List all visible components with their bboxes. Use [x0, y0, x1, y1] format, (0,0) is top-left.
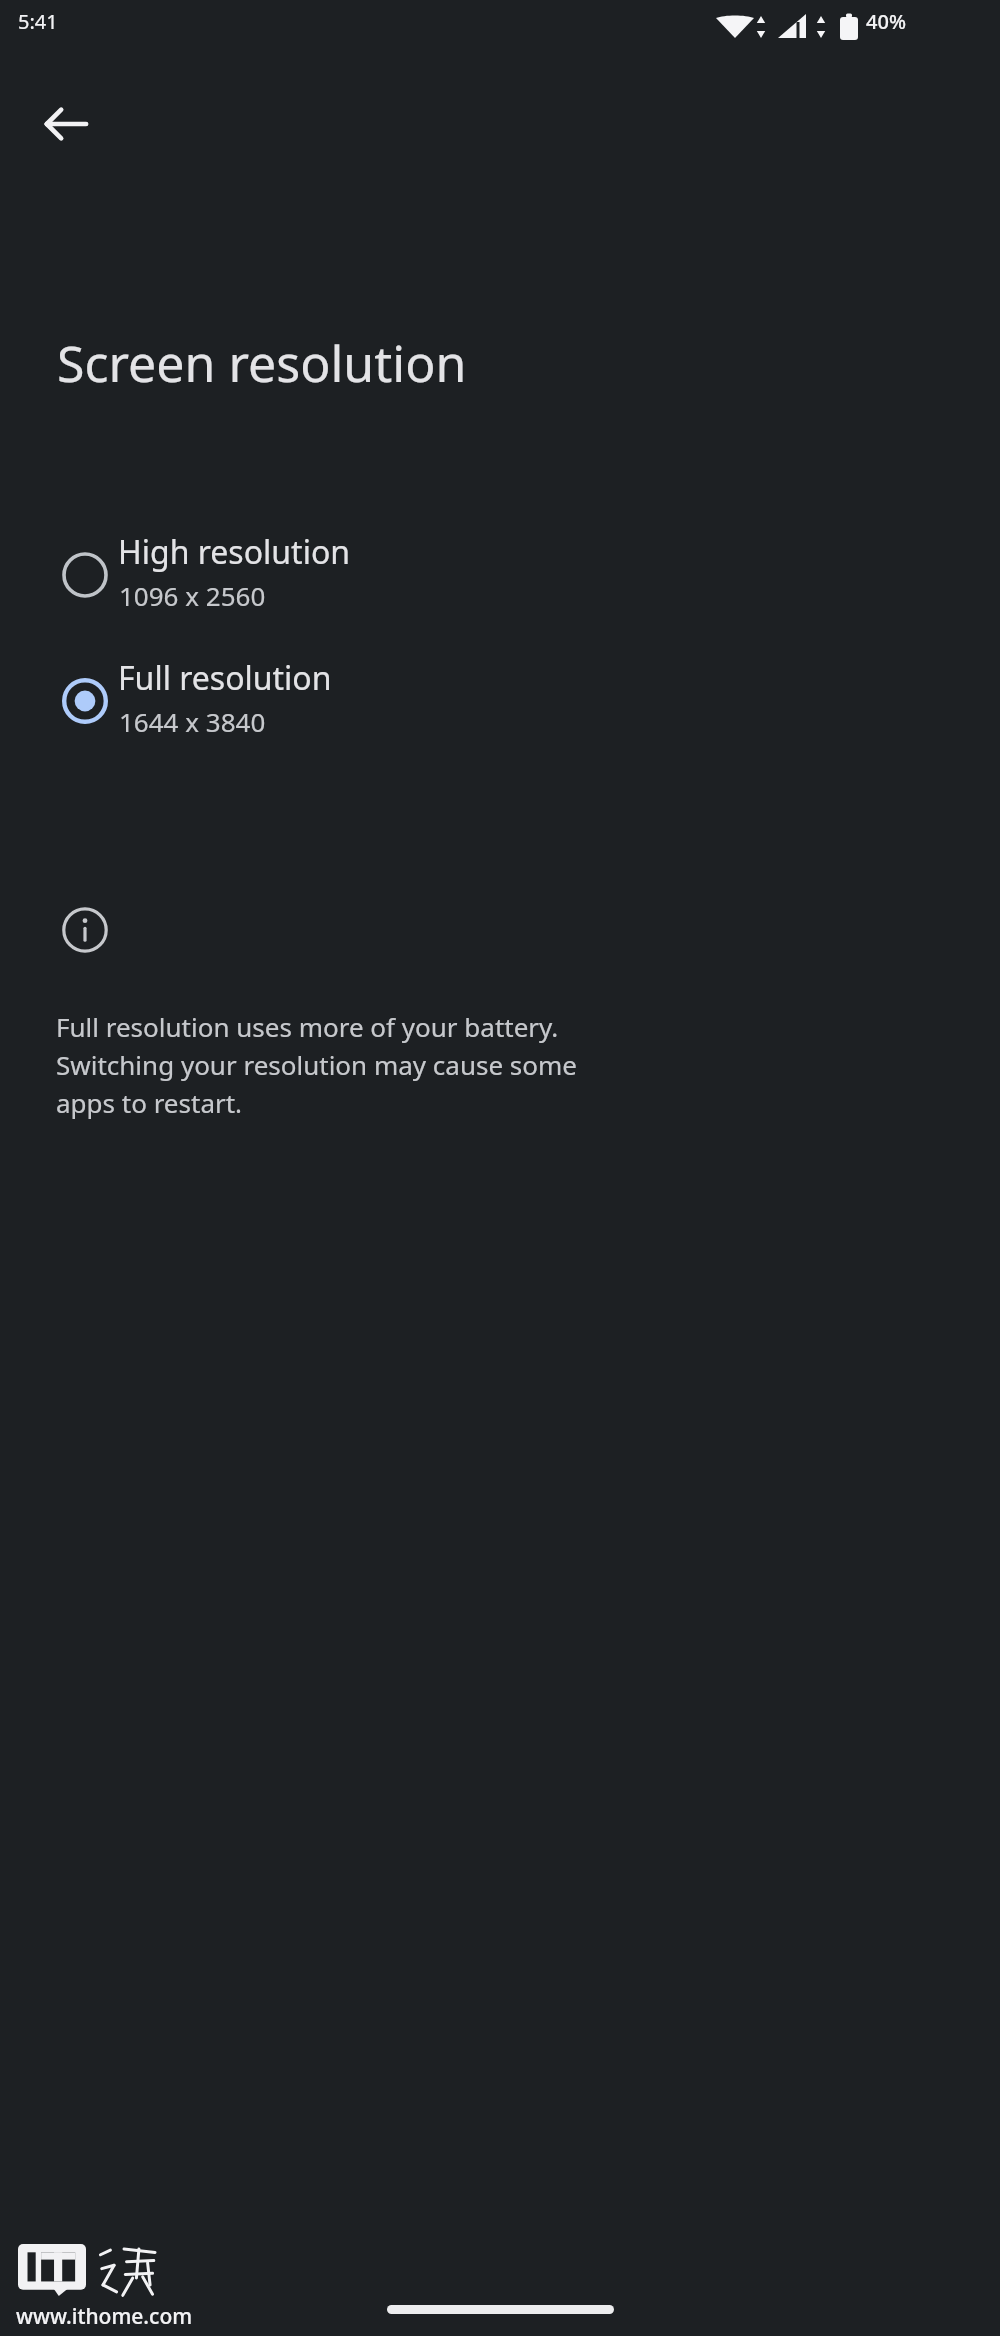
staticText: 5:41	[18, 8, 58, 35]
staticText: Full resolution	[118, 656, 332, 700]
button[interactable]: Back	[18, 76, 114, 172]
other: Information	[62, 907, 108, 953]
staticText: www.ithome.com	[16, 2302, 193, 2331]
button[interactable]: High resolution	[0, 528, 1000, 646]
staticText: High resolution	[118, 530, 351, 574]
staticText: 1644 x 3840	[119, 704, 266, 739]
staticText: 40%	[866, 8, 906, 35]
staticText: 1096 x 2560	[119, 578, 266, 613]
staticText: Full resolution uses more of your batter…	[56, 1009, 636, 1120]
button[interactable]: Full resolution	[0, 654, 1000, 772]
staticText: Screen resolution	[57, 329, 467, 397]
